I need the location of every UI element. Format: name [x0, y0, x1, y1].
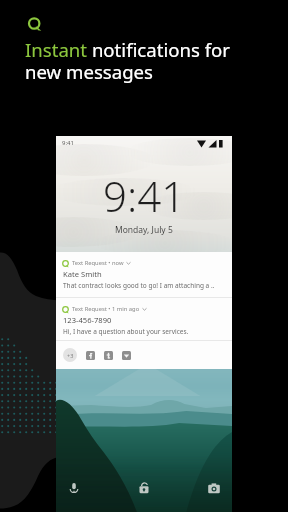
button[interactable]: Twitter: [122, 351, 131, 360]
staticText: 9:41: [62, 139, 74, 147]
button[interactable]: Facebook: [86, 351, 95, 360]
button[interactable]: Text Request • 1 min ago: [56, 298, 232, 340]
staticText: Instant notifications for new messages: [25, 37, 256, 85]
staticText: Monday, July 5: [115, 224, 173, 236]
button[interactable]: Camera: [207, 481, 221, 495]
staticText: 123-456-7890: [63, 315, 112, 325]
staticText: 9:41: [103, 167, 186, 224]
staticText: That contract looks good to go! I am att…: [63, 281, 215, 290]
button[interactable]: Tumblr: [104, 351, 113, 360]
button[interactable]: 3 more: [63, 348, 77, 362]
button[interactable]: Unlock: [137, 481, 151, 495]
button[interactable]: Voice assistant: [67, 481, 81, 495]
staticText: Text Request • now: [72, 259, 124, 267]
staticText: Text Request • 1 min ago: [72, 305, 140, 313]
staticText: Hi, I have a question about your service…: [63, 327, 189, 336]
staticText: +3: [67, 352, 74, 359]
staticText: Kate Smith: [63, 269, 102, 279]
button[interactable]: Text Request • now: [56, 252, 232, 297]
